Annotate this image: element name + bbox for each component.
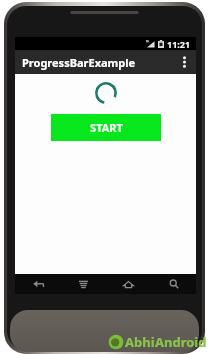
staticText: ProgressBarExample xyxy=(22,55,177,70)
button[interactable]: Menu xyxy=(61,274,106,294)
button[interactable]: Search xyxy=(151,274,196,294)
button[interactable]: START xyxy=(51,114,161,141)
staticText: Abhi xyxy=(125,333,155,351)
button[interactable]: Back xyxy=(15,274,61,294)
staticText: 11:21 xyxy=(167,38,191,50)
staticText: START xyxy=(90,120,123,135)
staticText: Android xyxy=(155,333,207,351)
button[interactable]: Home xyxy=(106,274,151,294)
button[interactable]: More options xyxy=(177,51,191,73)
